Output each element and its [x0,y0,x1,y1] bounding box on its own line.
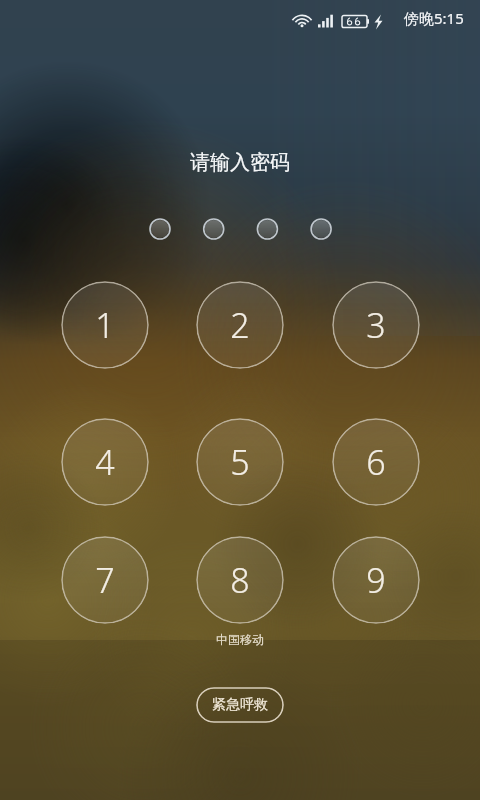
button[interactable]: 8 [196,536,284,624]
staticText: 中国移动 [216,632,264,647]
button[interactable]: 4 [61,418,149,506]
button[interactable]: 1 [61,281,149,369]
button[interactable]: 5 [196,418,284,506]
staticText: 1 [95,302,115,348]
staticText: 请输入密码 [190,150,290,175]
button[interactable]: 2 [196,281,284,369]
staticText: 2 [230,302,250,348]
staticText: 傍晚5:15 [404,8,464,28]
button[interactable]: 紧急呼救 [196,687,284,723]
staticText: 5 [230,439,250,485]
staticText: 紧急呼救 [212,696,268,714]
staticText: 6 [366,439,386,485]
staticText: 7 [95,557,115,603]
staticText: 4 [95,439,115,485]
staticText: 8 [230,557,250,603]
button[interactable]: 6 [332,418,420,506]
staticText: 3 [366,302,386,348]
button[interactable]: 9 [332,536,420,624]
button[interactable]: 3 [332,281,420,369]
staticText: 9 [366,557,386,603]
button[interactable]: 7 [61,536,149,624]
